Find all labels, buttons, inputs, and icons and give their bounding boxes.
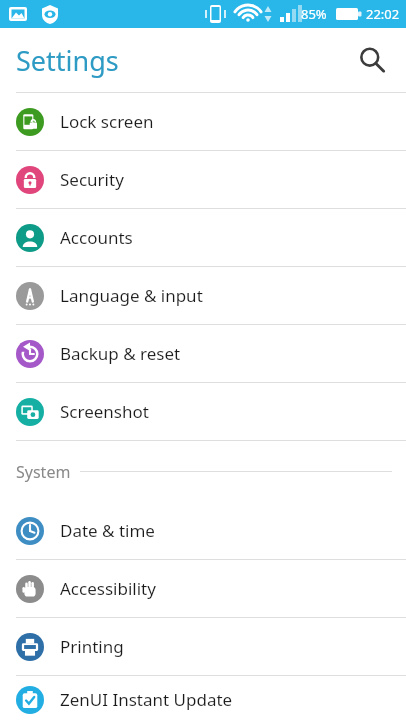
- staticText: Printing: [60, 635, 124, 658]
- staticText: Accounts: [60, 226, 133, 249]
- staticText: Security: [60, 168, 124, 191]
- button[interactable]: Accounts: [0, 209, 406, 266]
- staticText: ZenUI Instant Update: [60, 688, 233, 711]
- button[interactable]: Accessibility: [0, 560, 406, 617]
- button[interactable]: Search: [348, 36, 396, 84]
- button[interactable]: Language & input: [0, 267, 406, 324]
- staticText: Backup & reset: [60, 342, 181, 365]
- staticText: Lock screen: [60, 110, 154, 133]
- staticText: 22:02: [366, 5, 400, 23]
- button[interactable]: ZenUI Instant Update: [0, 676, 406, 723]
- button[interactable]: Security: [0, 151, 406, 208]
- staticText: Language & input: [60, 284, 203, 307]
- staticText: Accessibility: [60, 577, 156, 600]
- button[interactable]: Screenshot: [0, 383, 406, 440]
- button[interactable]: Lock screen: [0, 93, 406, 150]
- staticText: 85%: [301, 5, 327, 23]
- button[interactable]: Printing: [0, 618, 406, 675]
- button[interactable]: Backup & reset: [0, 325, 406, 382]
- staticText: Settings: [16, 42, 119, 79]
- staticText: Date & time: [60, 519, 155, 542]
- staticText: Screenshot: [60, 400, 149, 423]
- button[interactable]: Date & time: [0, 502, 406, 559]
- staticText: System: [16, 461, 71, 483]
